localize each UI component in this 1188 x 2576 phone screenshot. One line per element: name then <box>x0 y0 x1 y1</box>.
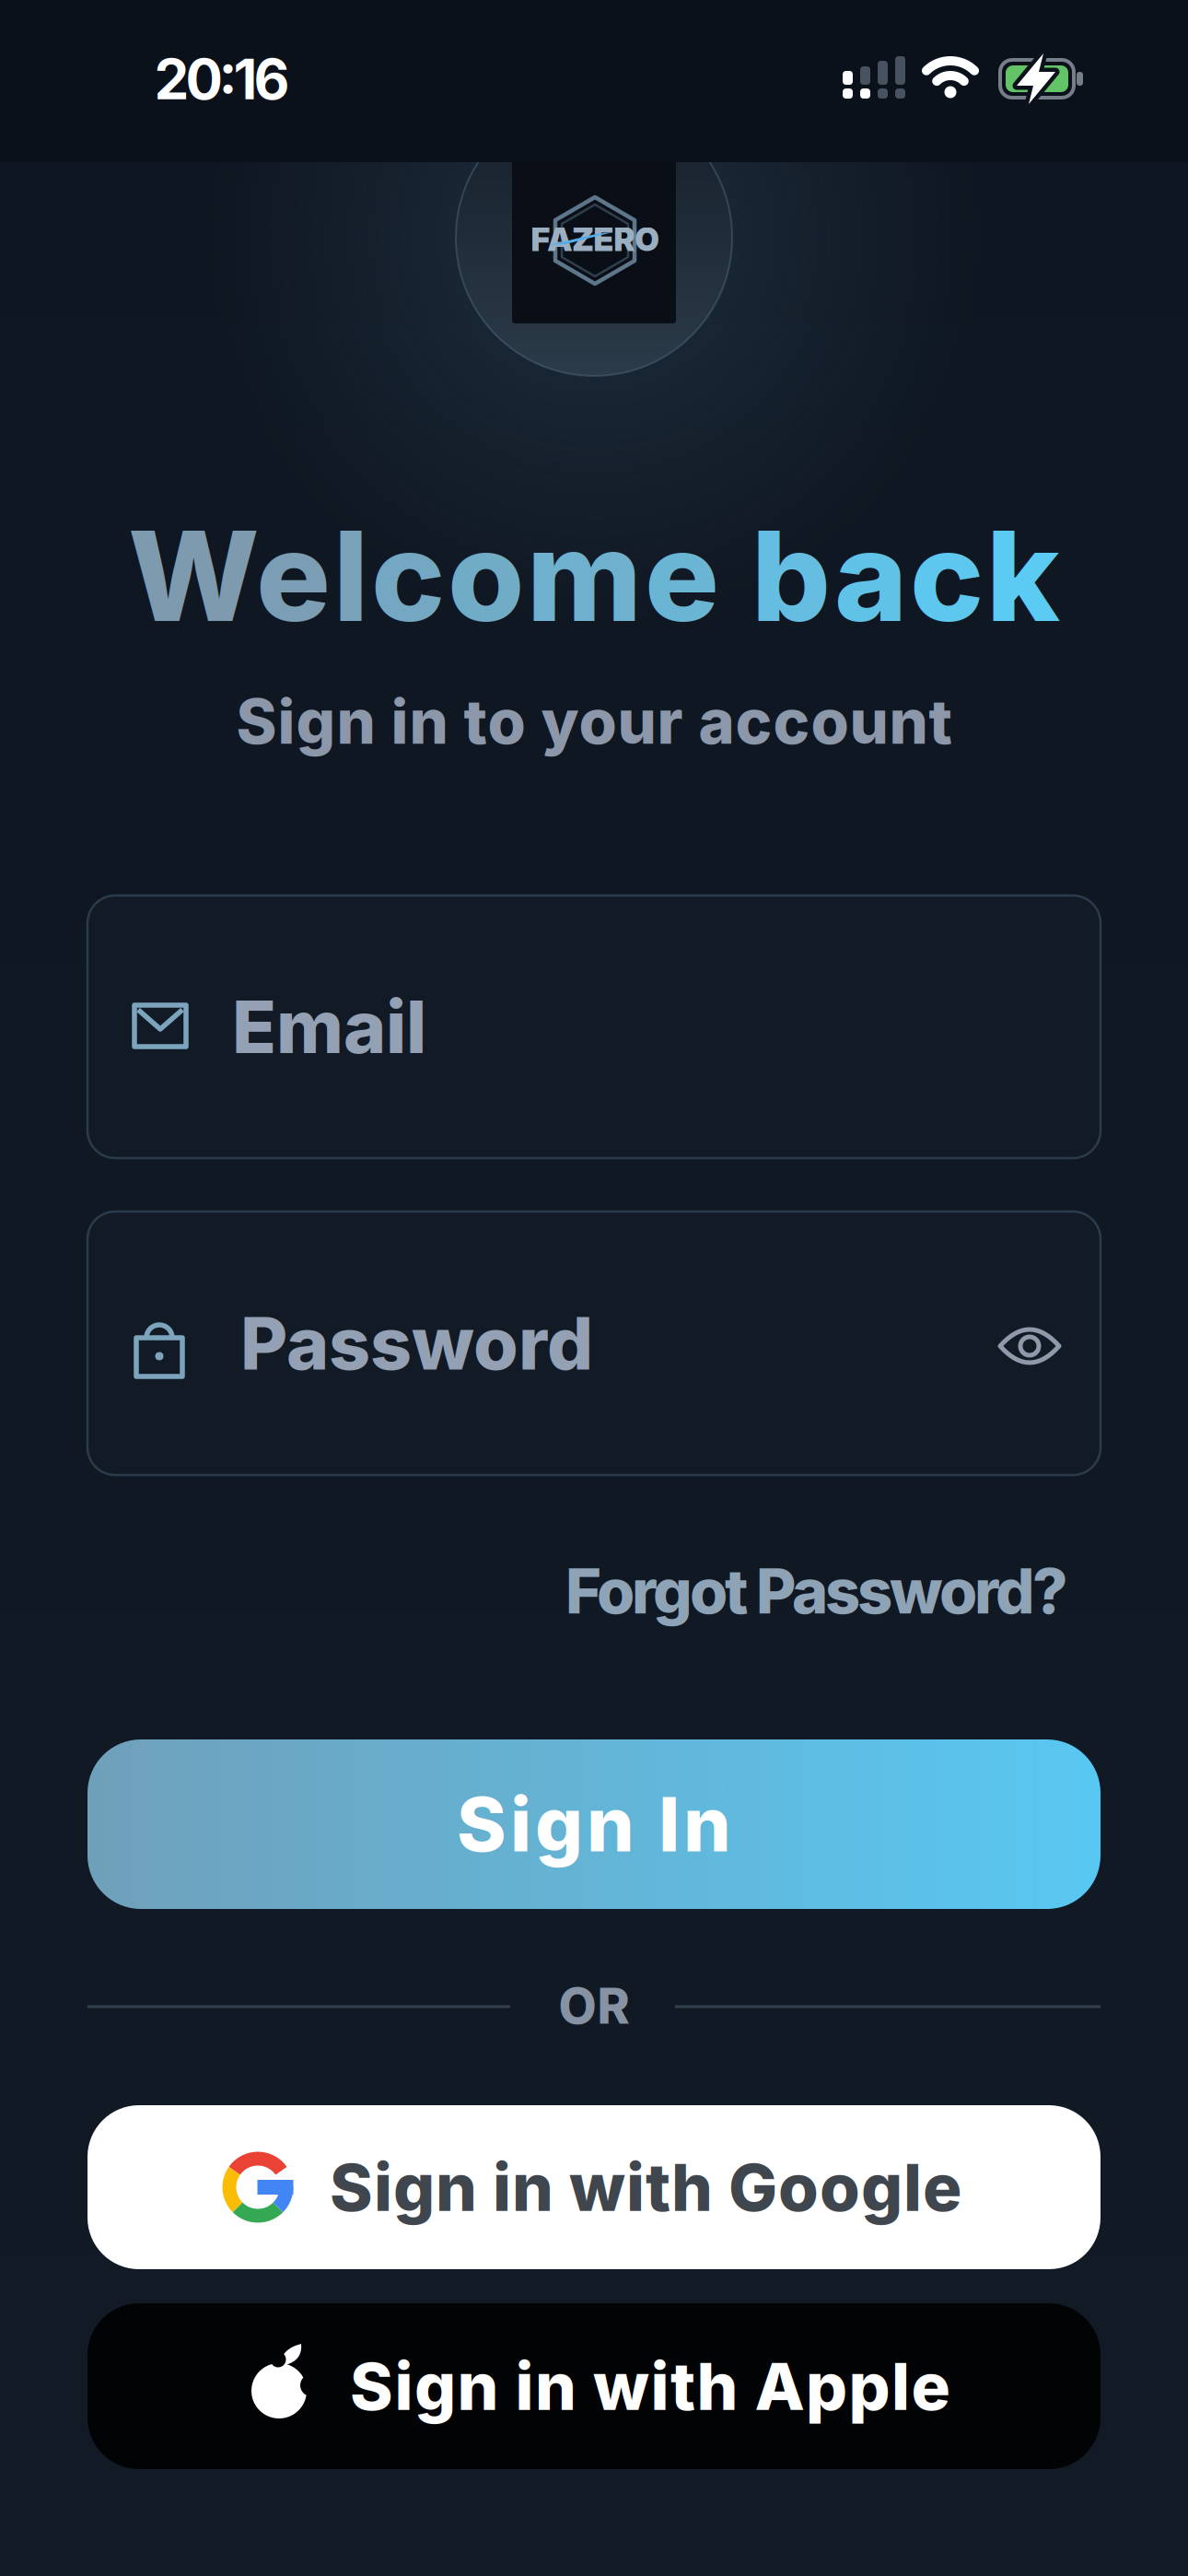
staticText: Sign in with Apple <box>350 2347 950 2426</box>
button[interactable]: Sign In <box>87 1739 1101 1909</box>
staticText: Forgot Password? <box>565 1554 1068 1628</box>
button[interactable]: Forgot Password? <box>565 1554 1068 1628</box>
button[interactable]: Sign in with Apple <box>87 2303 1101 2469</box>
staticText: Sign in to your account <box>236 684 952 759</box>
staticText: Sign in with Google <box>330 2148 961 2227</box>
button[interactable]: Email <box>87 896 1101 1158</box>
staticText: Sign In <box>457 1779 731 1870</box>
staticText: Email <box>232 983 426 1071</box>
button[interactable]: Sign in with Google <box>87 2105 1101 2269</box>
staticText: Password <box>240 1299 593 1387</box>
staticText: FAZERO <box>531 220 659 259</box>
staticText: OR <box>559 1976 629 2035</box>
button[interactable]: Password <box>87 1212 1101 1475</box>
staticText: Welcome back <box>128 501 1060 651</box>
staticText: 20:16 <box>154 46 290 113</box>
